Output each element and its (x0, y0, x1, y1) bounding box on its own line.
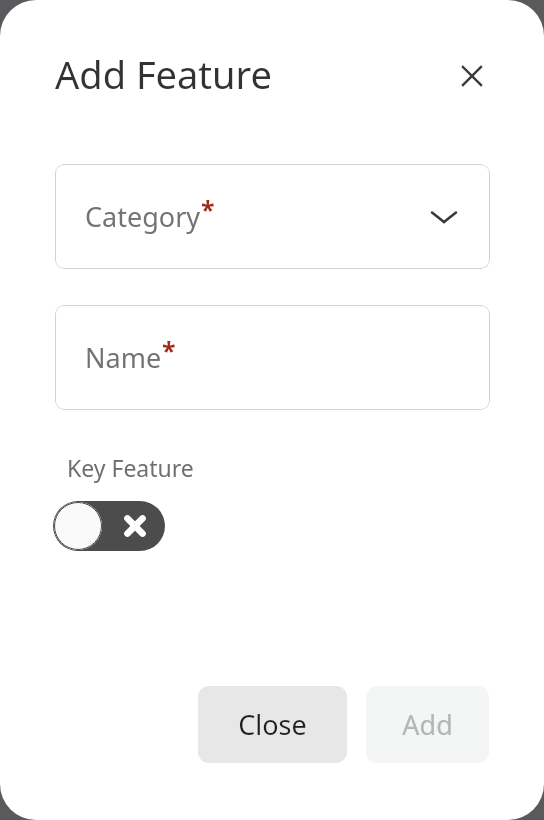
staticText: * (162, 333, 176, 367)
button[interactable]: Add (366, 686, 489, 763)
button[interactable]: Close dialog (446, 50, 498, 102)
staticText: Category (85, 198, 201, 235)
staticText: Add (402, 706, 453, 743)
staticText: Close (238, 706, 307, 743)
staticText: * (201, 192, 215, 226)
staticText: Key Feature (67, 452, 194, 483)
button[interactable]: Key Feature toggle, off (53, 501, 165, 551)
button[interactable]: Category (55, 164, 490, 269)
staticText: Name (85, 339, 162, 376)
button[interactable]: Name (55, 305, 490, 410)
staticText: Add Feature (55, 48, 272, 100)
button[interactable]: Close (198, 686, 347, 763)
